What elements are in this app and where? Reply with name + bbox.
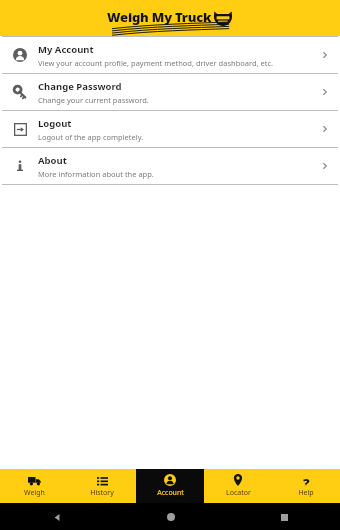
staticText: Change Password: [38, 80, 122, 93]
button[interactable]: Home: [163, 509, 179, 525]
button[interactable]: About: [2, 148, 338, 184]
button[interactable]: Weigh: [0, 469, 68, 503]
button[interactable]: ?: [272, 469, 340, 503]
button[interactable]: Change Password: [2, 74, 338, 110]
staticText: Change your current password.: [38, 95, 149, 105]
staticText: Weigh: [24, 488, 45, 498]
button[interactable]: Logout: [2, 111, 338, 147]
button[interactable]: Account: [136, 469, 204, 503]
staticText: More information about the app.: [38, 169, 154, 179]
staticText: Logout: [38, 117, 72, 130]
staticText: My Account: [38, 43, 94, 56]
staticText: ?: [303, 474, 310, 486]
button[interactable]: Locator: [204, 469, 272, 503]
staticText: Help: [298, 488, 314, 498]
staticText: About: [38, 154, 67, 167]
button[interactable]: History: [68, 469, 136, 503]
button[interactable]: Back: [49, 509, 65, 525]
staticText: View your account profile, payment metho…: [38, 58, 274, 68]
staticText: Weigh My Truck: [107, 8, 212, 26]
staticText: Locator: [226, 488, 251, 498]
staticText: History: [90, 488, 114, 498]
button[interactable]: Recent apps: [276, 509, 292, 525]
staticText: Logout of the app completely.: [38, 132, 144, 142]
button[interactable]: My Account: [2, 37, 338, 73]
staticText: Account: [157, 488, 184, 498]
